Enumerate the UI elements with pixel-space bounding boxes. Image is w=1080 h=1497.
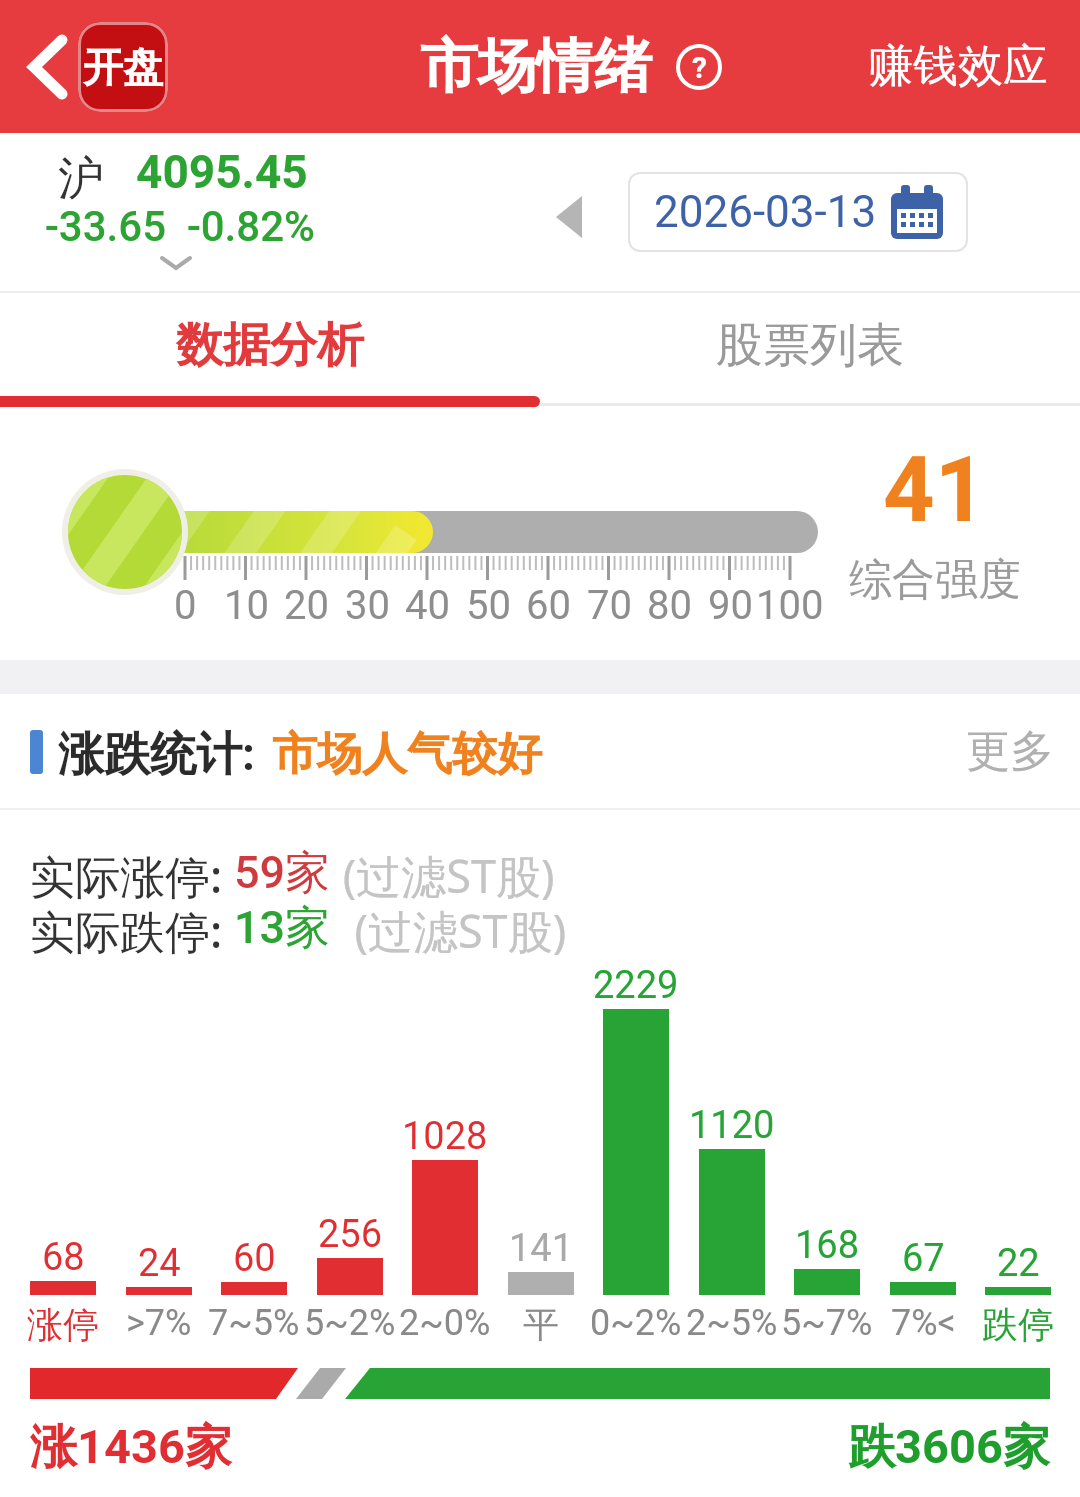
staticText: 41 <box>883 438 987 543</box>
staticText: 市场人气较好 <box>272 726 542 783</box>
staticText: 22 <box>997 1241 1040 1286</box>
button[interactable]: 股票列表 <box>540 293 1080 397</box>
button[interactable]: 市场情绪 <box>420 0 722 133</box>
staticText: 沪 <box>58 150 104 208</box>
staticText: (过滤ST股) <box>331 845 555 906</box>
staticText: 跌停 <box>982 1302 1054 1347</box>
staticText: 5~7% <box>781 1302 873 1344</box>
staticText: 平 <box>523 1302 559 1347</box>
staticText: 10 <box>224 582 269 629</box>
staticText: 跌3606家 <box>848 1418 1050 1477</box>
staticText: >7% <box>126 1302 192 1344</box>
staticText: 70 <box>587 582 632 629</box>
staticText: 20 <box>284 582 329 629</box>
staticText: 2~5% <box>686 1302 778 1344</box>
staticText: 256 <box>318 1212 383 1257</box>
staticText: 实际涨停: <box>30 845 234 906</box>
staticText: 0 <box>174 582 197 629</box>
staticText: 1028 <box>402 1114 488 1159</box>
staticText: 13家 <box>234 900 331 957</box>
staticText: 开盘 <box>83 42 163 92</box>
staticText: (过滤ST股) <box>331 900 567 961</box>
staticText: 涨停 <box>27 1302 99 1347</box>
staticText: 7~5% <box>208 1302 300 1344</box>
staticText: 市场情绪 <box>420 30 652 103</box>
button[interactable]: 更多 <box>950 694 1080 808</box>
staticText: 涨跌统计: <box>58 726 255 784</box>
staticText: 涨1436家 <box>30 1418 232 1477</box>
button[interactable]: 2026-03-13 <box>628 172 968 252</box>
staticText: 40 <box>405 582 450 629</box>
staticText: 168 <box>795 1223 860 1268</box>
staticText: 67 <box>902 1236 945 1281</box>
button[interactable] <box>556 196 582 238</box>
staticText: 80 <box>647 582 692 629</box>
staticText: 数据分析 <box>176 316 364 375</box>
staticText: 60 <box>526 582 571 629</box>
button[interactable]: 赚钱效应 <box>868 0 1048 133</box>
staticText: 股票列表 <box>716 316 904 375</box>
staticText: 7%< <box>891 1302 956 1344</box>
staticText: 68 <box>42 1235 85 1280</box>
staticText: 2~0% <box>399 1302 491 1344</box>
staticText: ? <box>692 50 707 85</box>
staticText: 更多 <box>966 724 1054 779</box>
staticText: 30 <box>345 582 390 629</box>
staticText: 90 <box>708 582 753 629</box>
staticText: 赚钱效应 <box>868 38 1048 95</box>
staticText: -33.65 -0.82% <box>45 202 315 251</box>
staticText: 5~2% <box>304 1302 396 1344</box>
button[interactable]: 开盘 <box>24 22 168 112</box>
staticText: 60 <box>233 1236 276 1281</box>
staticText: 50 <box>466 582 511 629</box>
staticText: 4095.45 <box>136 145 308 199</box>
staticText: 141 <box>509 1226 574 1271</box>
staticText: 2229 <box>593 963 679 1008</box>
staticText: 1120 <box>689 1103 775 1148</box>
staticText: 24 <box>138 1241 181 1286</box>
staticText: 2026-03-13 <box>654 186 877 238</box>
staticText: 综合强度 <box>849 553 1021 607</box>
staticText: 0~2% <box>590 1302 682 1344</box>
staticText: 实际跌停: <box>30 900 234 961</box>
staticText: 59家 <box>234 845 331 902</box>
staticText: 100 <box>756 582 824 629</box>
button[interactable]: 数据分析 <box>0 293 540 397</box>
